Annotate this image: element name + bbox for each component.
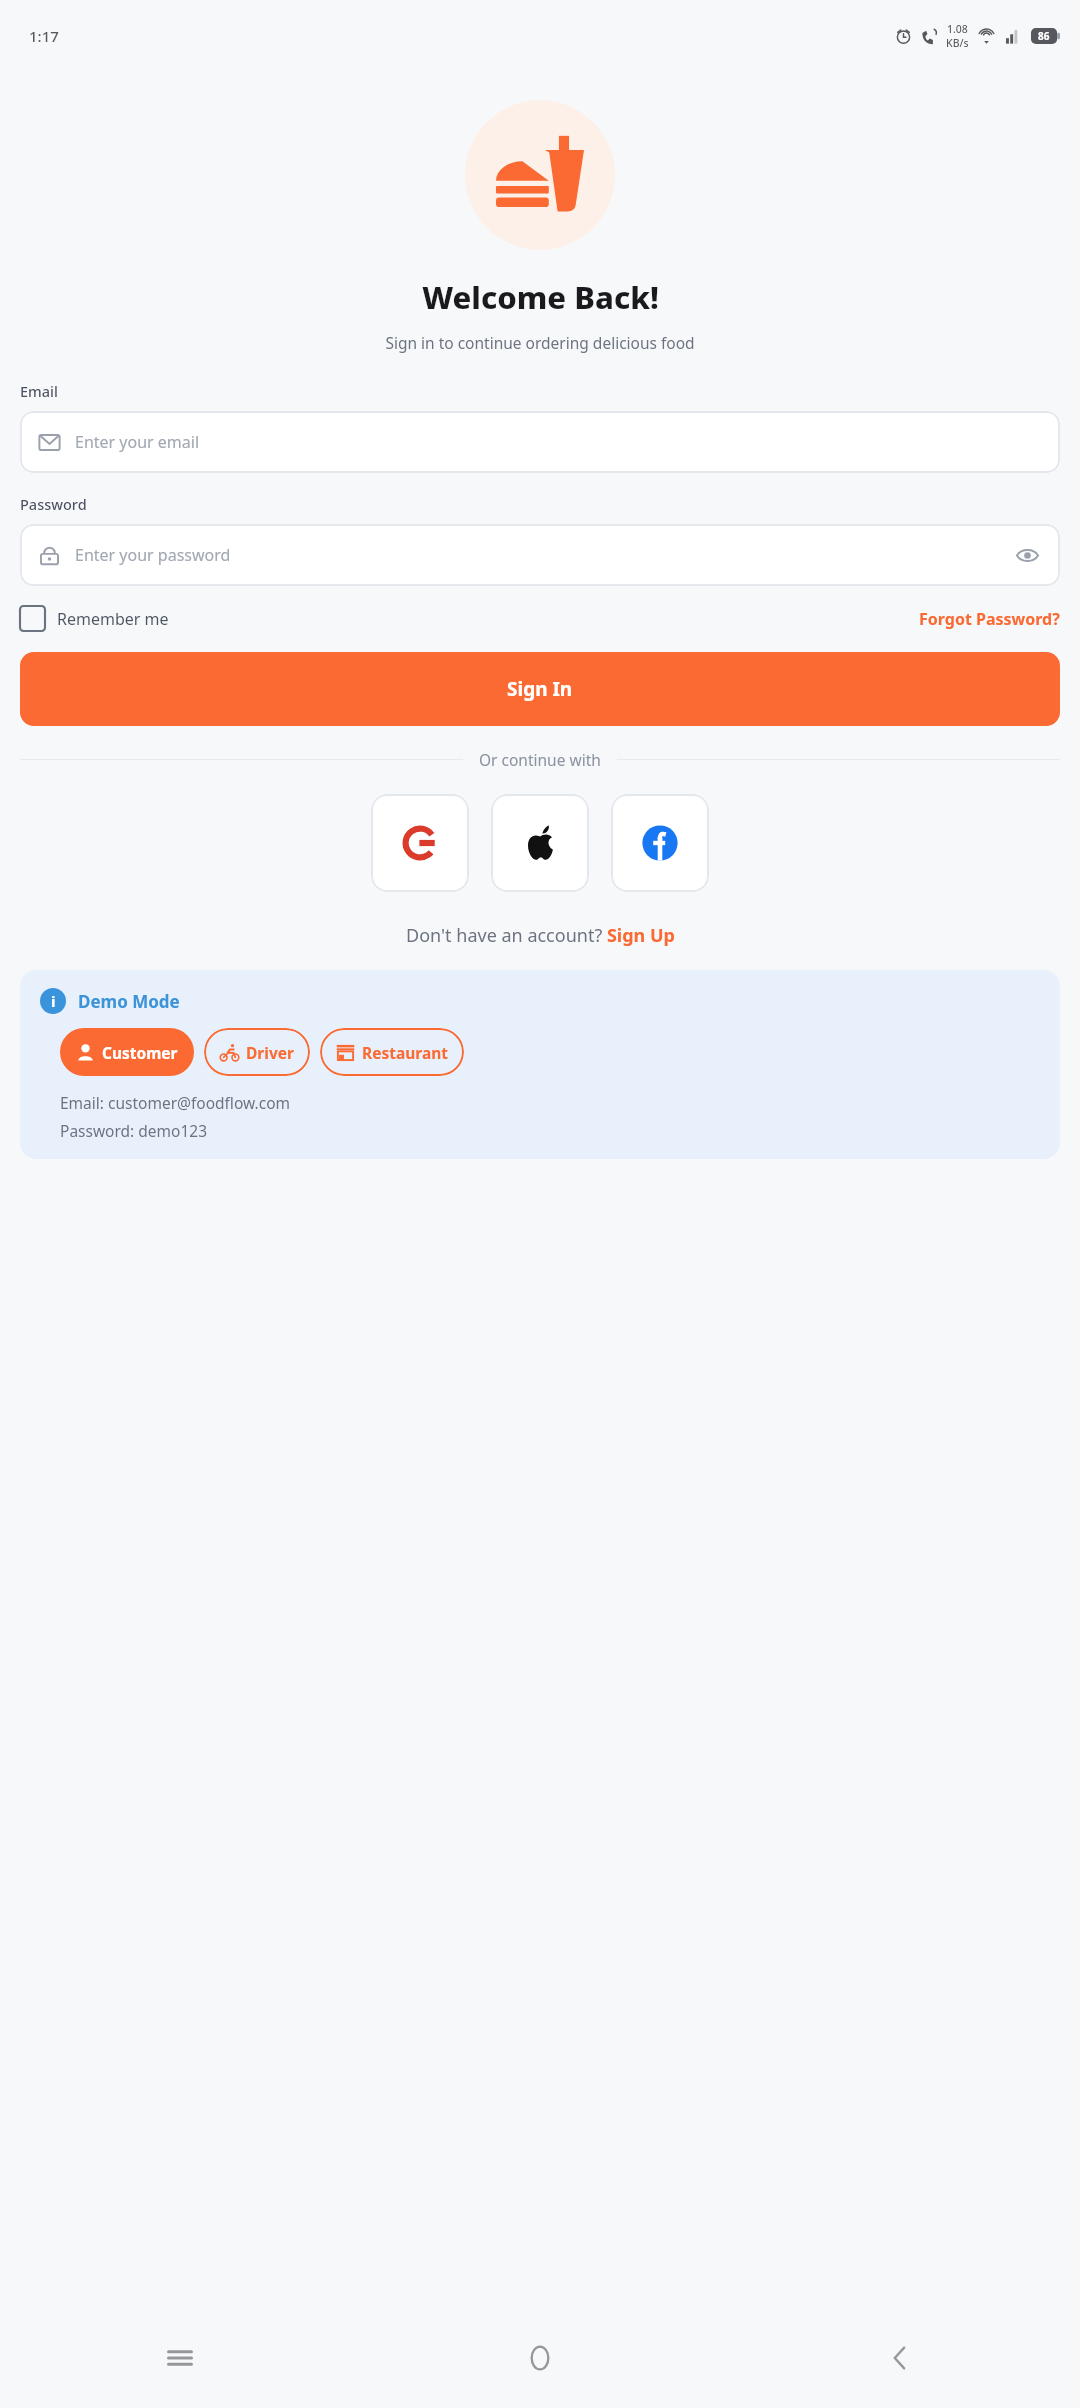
staticText: 86: [1038, 29, 1050, 43]
staticText: Restaurant: [362, 1042, 448, 1063]
staticText: Email: customer@foodflow.com: [60, 1092, 291, 1113]
staticText: Email: [20, 381, 58, 401]
staticText: Driver: [246, 1042, 294, 1063]
button[interactable]: Enter your password: [20, 524, 1060, 586]
staticText: Enter your email: [75, 431, 1042, 453]
staticText: Password: demo123: [60, 1120, 208, 1141]
staticText: Welcome Back!: [422, 276, 659, 318]
button[interactable]: Back: [720, 2308, 1080, 2408]
button[interactable]: Driver: [204, 1028, 310, 1076]
button[interactable]: Home: [360, 2308, 720, 2408]
button[interactable]: Forgot Password?: [919, 608, 1060, 630]
staticText: Demo Mode: [78, 990, 180, 1013]
staticText: Enter your password: [75, 544, 1012, 566]
staticText: Don't have an account? Sign Up: [406, 923, 675, 948]
button[interactable]: Sign in with Apple: [491, 794, 589, 892]
button[interactable]: Sign in with Google: [371, 794, 469, 892]
staticText: Sign In: [507, 676, 573, 702]
button[interactable]: Enter your email: [20, 411, 1060, 473]
button[interactable]: Sign in with Facebook: [611, 794, 709, 892]
button[interactable]: Customer: [60, 1028, 194, 1076]
staticText: i: [51, 991, 56, 1011]
button[interactable]: Recent apps: [0, 2308, 360, 2408]
button[interactable]: Don't have an account? Sign Up: [406, 923, 675, 948]
button[interactable]: Show password: [1012, 540, 1042, 570]
staticText: Customer: [102, 1042, 178, 1063]
staticText: Password: [20, 494, 87, 514]
staticText: Forgot Password?: [919, 608, 1060, 630]
staticText: 1.08: [947, 22, 968, 36]
staticText: KB/s: [946, 36, 969, 50]
staticText: Or continue with: [479, 749, 601, 770]
button[interactable]: Restaurant: [320, 1028, 464, 1076]
staticText: Remember me: [57, 608, 169, 630]
button[interactable]: Sign In: [20, 652, 1060, 726]
staticText: 1:17: [29, 26, 59, 46]
button[interactable]: Remember me: [20, 606, 169, 631]
staticText: Sign in to continue ordering delicious f…: [385, 332, 695, 353]
